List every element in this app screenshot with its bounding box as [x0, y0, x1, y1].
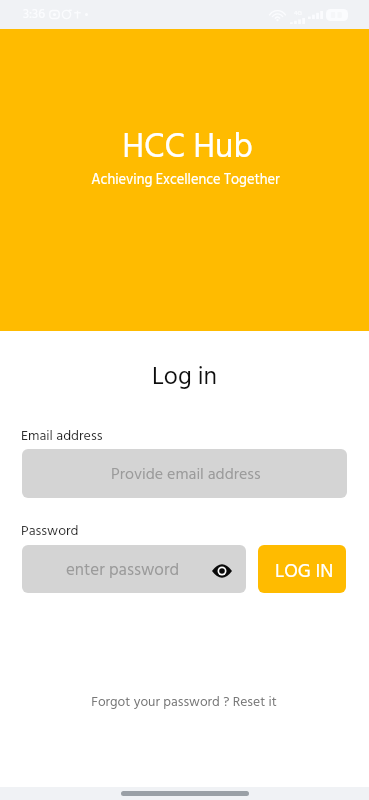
button[interactable]: enter password [22, 545, 246, 593]
staticText: Password [21, 520, 79, 542]
staticText: Achieving Excellence Together [1, 169, 369, 192]
staticText: 4G [294, 8, 302, 18]
button[interactable]: Show password [209, 558, 235, 584]
button[interactable]: LOG IN [258, 545, 346, 593]
staticText: enter password [66, 557, 180, 584]
button[interactable]: Provide email address [22, 449, 347, 498]
staticText: 3:36 [23, 4, 46, 25]
button[interactable]: Forgot your password ? Reset it [85, 687, 283, 719]
staticText: Log in [0, 358, 369, 398]
staticText: HCC Hub [3, 121, 369, 175]
staticText: Provide email address [111, 462, 261, 488]
staticText: Email address [21, 425, 103, 447]
staticText: LOG IN [275, 557, 334, 588]
